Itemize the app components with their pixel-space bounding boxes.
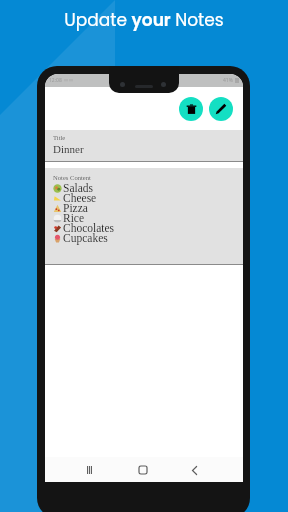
staticText: Rice [63, 212, 85, 225]
button[interactable]: Edit note [209, 97, 233, 121]
button[interactable]: Home [135, 462, 151, 478]
staticText: Pizza [63, 202, 88, 215]
staticText: Chocolates [63, 222, 115, 235]
button[interactable]: Delete note [179, 97, 203, 121]
staticText: 41% [223, 77, 233, 84]
staticText: Notes Content [53, 174, 91, 181]
button[interactable]: Back [186, 462, 202, 478]
button[interactable]: Recent apps [81, 462, 97, 478]
staticText: Update your Notes [64, 8, 224, 32]
staticText: Cupcakes [63, 232, 108, 245]
staticText: Cheese [63, 192, 97, 205]
staticText: 12:08 [49, 77, 62, 84]
staticText: Dinner [53, 143, 84, 155]
staticText: Title [53, 134, 66, 141]
staticText: Salads [63, 182, 94, 195]
